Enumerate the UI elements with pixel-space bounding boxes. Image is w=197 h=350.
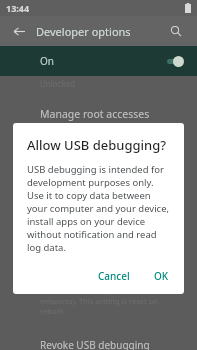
- button[interactable]: ADB over network: [0, 260, 197, 316]
- button[interactable]: Back: [8, 20, 30, 42]
- staticText: Unlocked: [40, 78, 76, 89]
- button[interactable]: On: [0, 46, 197, 76]
- staticText: Cancel: [98, 269, 130, 283]
- button[interactable]: Manage root accesses: [0, 107, 197, 134]
- staticText: Developer options: [36, 24, 131, 39]
- staticText: OK: [154, 269, 169, 283]
- button[interactable]: Revoke USB debugging authorisations: [0, 338, 197, 350]
- button[interactable]: OK: [147, 264, 176, 288]
- button[interactable]: Toggle developer options: [164, 55, 185, 67]
- button[interactable]: Toggle ADB over network: [167, 276, 187, 287]
- staticText: Allow USB debugging?: [27, 136, 167, 154]
- staticText: Enable TCP/IP debugging over network int…: [40, 276, 161, 316]
- button[interactable]: Cancel: [91, 264, 137, 288]
- staticText: On: [40, 54, 54, 68]
- staticText: Manage root accesses: [40, 107, 150, 121]
- staticText: Revoke USB debugging authorisations: [40, 338, 187, 350]
- staticText: ADB over network: [40, 260, 130, 274]
- staticText: USB debugging is intended for developmen…: [27, 163, 170, 254]
- button[interactable]: Search: [165, 20, 187, 42]
- staticText: 13:44: [6, 2, 30, 14]
